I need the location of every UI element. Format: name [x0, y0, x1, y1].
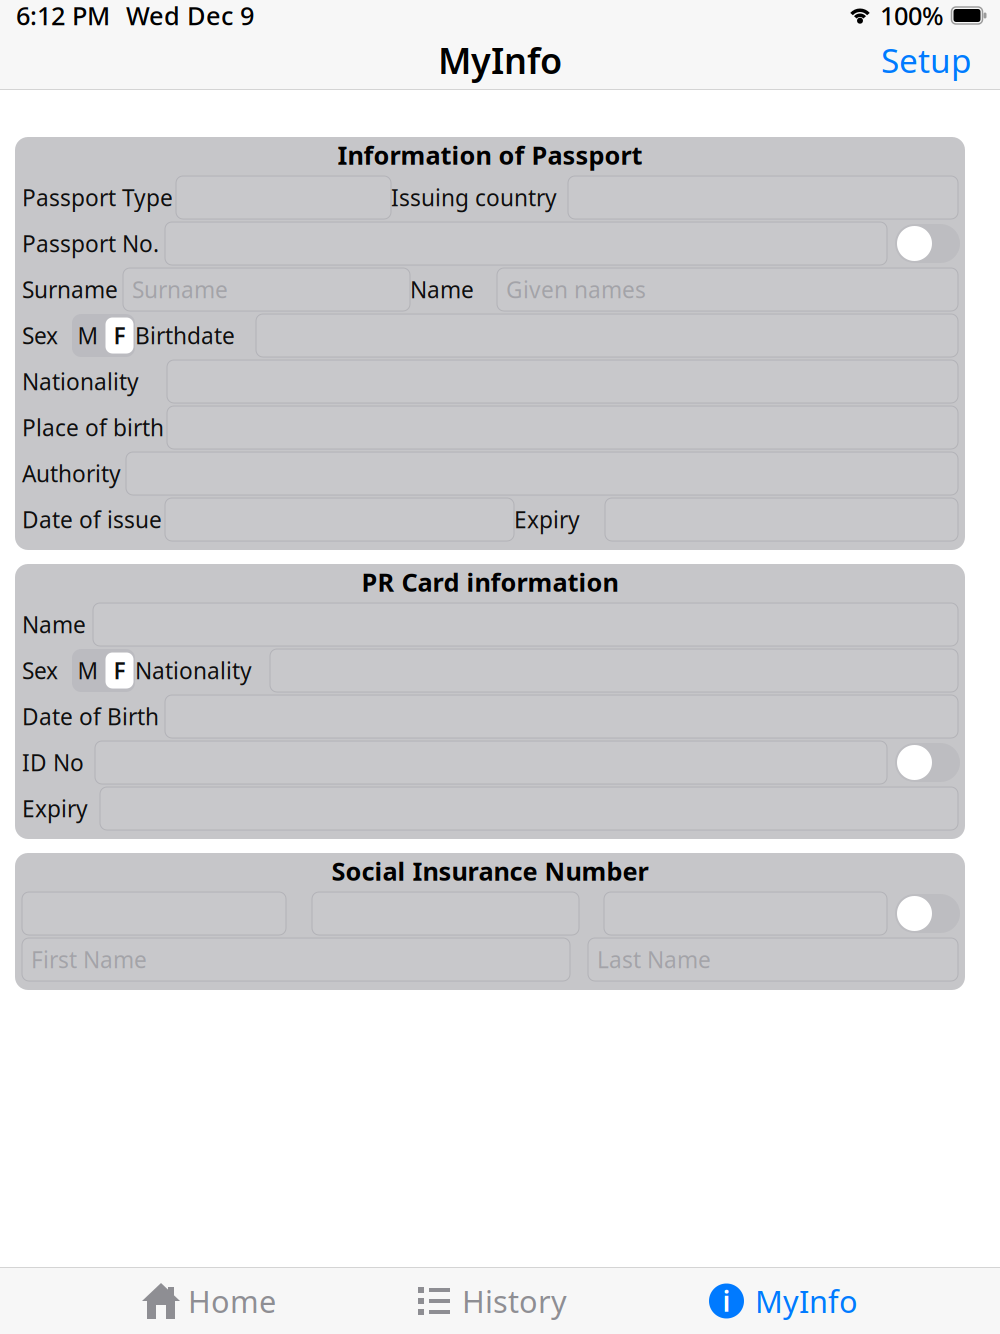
staticText: Home: [188, 1281, 276, 1321]
staticText: i: [722, 1282, 730, 1320]
staticText: Sex: [22, 320, 58, 350]
staticText: Name: [410, 274, 474, 304]
button[interactable]: M: [72, 649, 135, 692]
staticText: Passport No.: [22, 228, 159, 258]
staticText: MyInfo: [755, 1281, 858, 1321]
staticText: Authority: [22, 458, 121, 488]
staticText: Passport Type: [22, 182, 173, 212]
staticText: ID No: [22, 747, 84, 777]
staticText: Place of birth: [22, 412, 164, 442]
button[interactable]: Toggle: [895, 743, 960, 782]
button[interactable]: Toggle: [895, 894, 960, 933]
staticText: M: [77, 320, 98, 350]
staticText: Setup: [881, 38, 972, 82]
staticText: Sex: [22, 655, 58, 685]
staticText: Expiry: [514, 504, 580, 534]
button[interactable]: i: [709, 1281, 858, 1321]
staticText: Last Name: [597, 944, 711, 974]
staticText: Name: [22, 609, 86, 639]
staticText: F: [113, 655, 125, 685]
staticText: Date of Birth: [22, 701, 159, 731]
staticText: Social Insurance Number: [331, 854, 648, 888]
staticText: History: [462, 1281, 567, 1321]
button[interactable]: Setup: [875, 38, 978, 82]
staticText: Nationality: [22, 366, 139, 396]
staticText: Nationality: [135, 655, 252, 685]
staticText: MyInfo: [438, 36, 562, 84]
staticText: Date of issue: [22, 504, 162, 534]
button[interactable]: Home: [142, 1281, 276, 1321]
staticText: F: [113, 320, 125, 350]
staticText: 6:12 PM: [16, 0, 110, 32]
staticText: Wed Dec 9: [126, 0, 254, 32]
staticText: First Name: [31, 944, 147, 974]
staticText: M: [77, 655, 98, 685]
button[interactable]: M: [72, 314, 135, 357]
staticText: Birthdate: [135, 320, 235, 350]
staticText: Issuing country: [391, 182, 557, 212]
staticText: Surname: [132, 274, 228, 304]
staticText: PR Card information: [361, 565, 618, 599]
button[interactable]: Toggle: [895, 224, 960, 263]
staticText: Given names: [506, 274, 646, 304]
staticText: Surname: [22, 274, 118, 304]
button[interactable]: History: [418, 1281, 567, 1321]
staticText: Information of Passport: [337, 138, 642, 172]
staticText: Expiry: [22, 793, 88, 823]
staticText: 100%: [880, 0, 944, 32]
